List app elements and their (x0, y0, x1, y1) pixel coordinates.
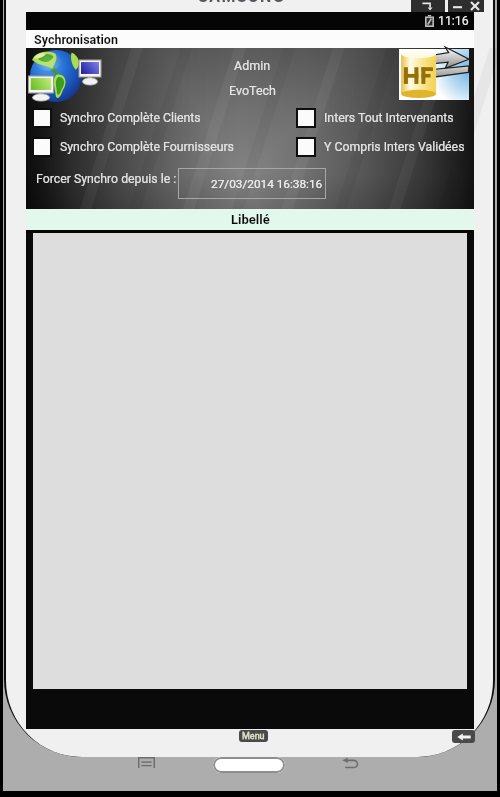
staticText: EvoTech (229, 83, 276, 98)
button[interactable]: Menu (239, 730, 268, 742)
staticText: Menu (242, 731, 265, 742)
button[interactable]: 27/03/2014 16:38:16 (178, 168, 326, 199)
staticText: 11:16 (438, 14, 469, 28)
button[interactable]: Synchro Complète Clients (32, 108, 201, 128)
staticText: 27/03/2014 16:38:16 (211, 177, 323, 191)
button[interactable]: Y Compris Inters Validées (296, 137, 465, 157)
button[interactable]: Inters Tout Intervenants (296, 108, 454, 128)
button[interactable]: Back (452, 730, 475, 743)
button[interactable]: Home (213, 757, 285, 773)
staticText: Sychronisation (34, 32, 118, 47)
staticText: Inters Tout Intervenants (324, 111, 454, 125)
staticText: Forcer Synchro depuis le : (36, 172, 177, 186)
button[interactable]: Minimize (448, 0, 466, 12)
button[interactable]: Rotate (411, 0, 445, 12)
staticText: Admin (234, 58, 271, 73)
staticText: Libellé (231, 212, 270, 227)
staticText: Synchro Complète Clients (60, 111, 201, 125)
staticText: SAMSUNG (198, 0, 285, 6)
staticText: Y Compris Inters Validées (324, 140, 465, 154)
button[interactable]: Recent apps (138, 757, 155, 768)
button[interactable]: Synchro Complète Fournisseurs (32, 137, 234, 157)
button[interactable]: Close (466, 0, 484, 12)
staticText: Synchro Complète Fournisseurs (60, 140, 234, 154)
button[interactable]: Back (342, 757, 359, 769)
